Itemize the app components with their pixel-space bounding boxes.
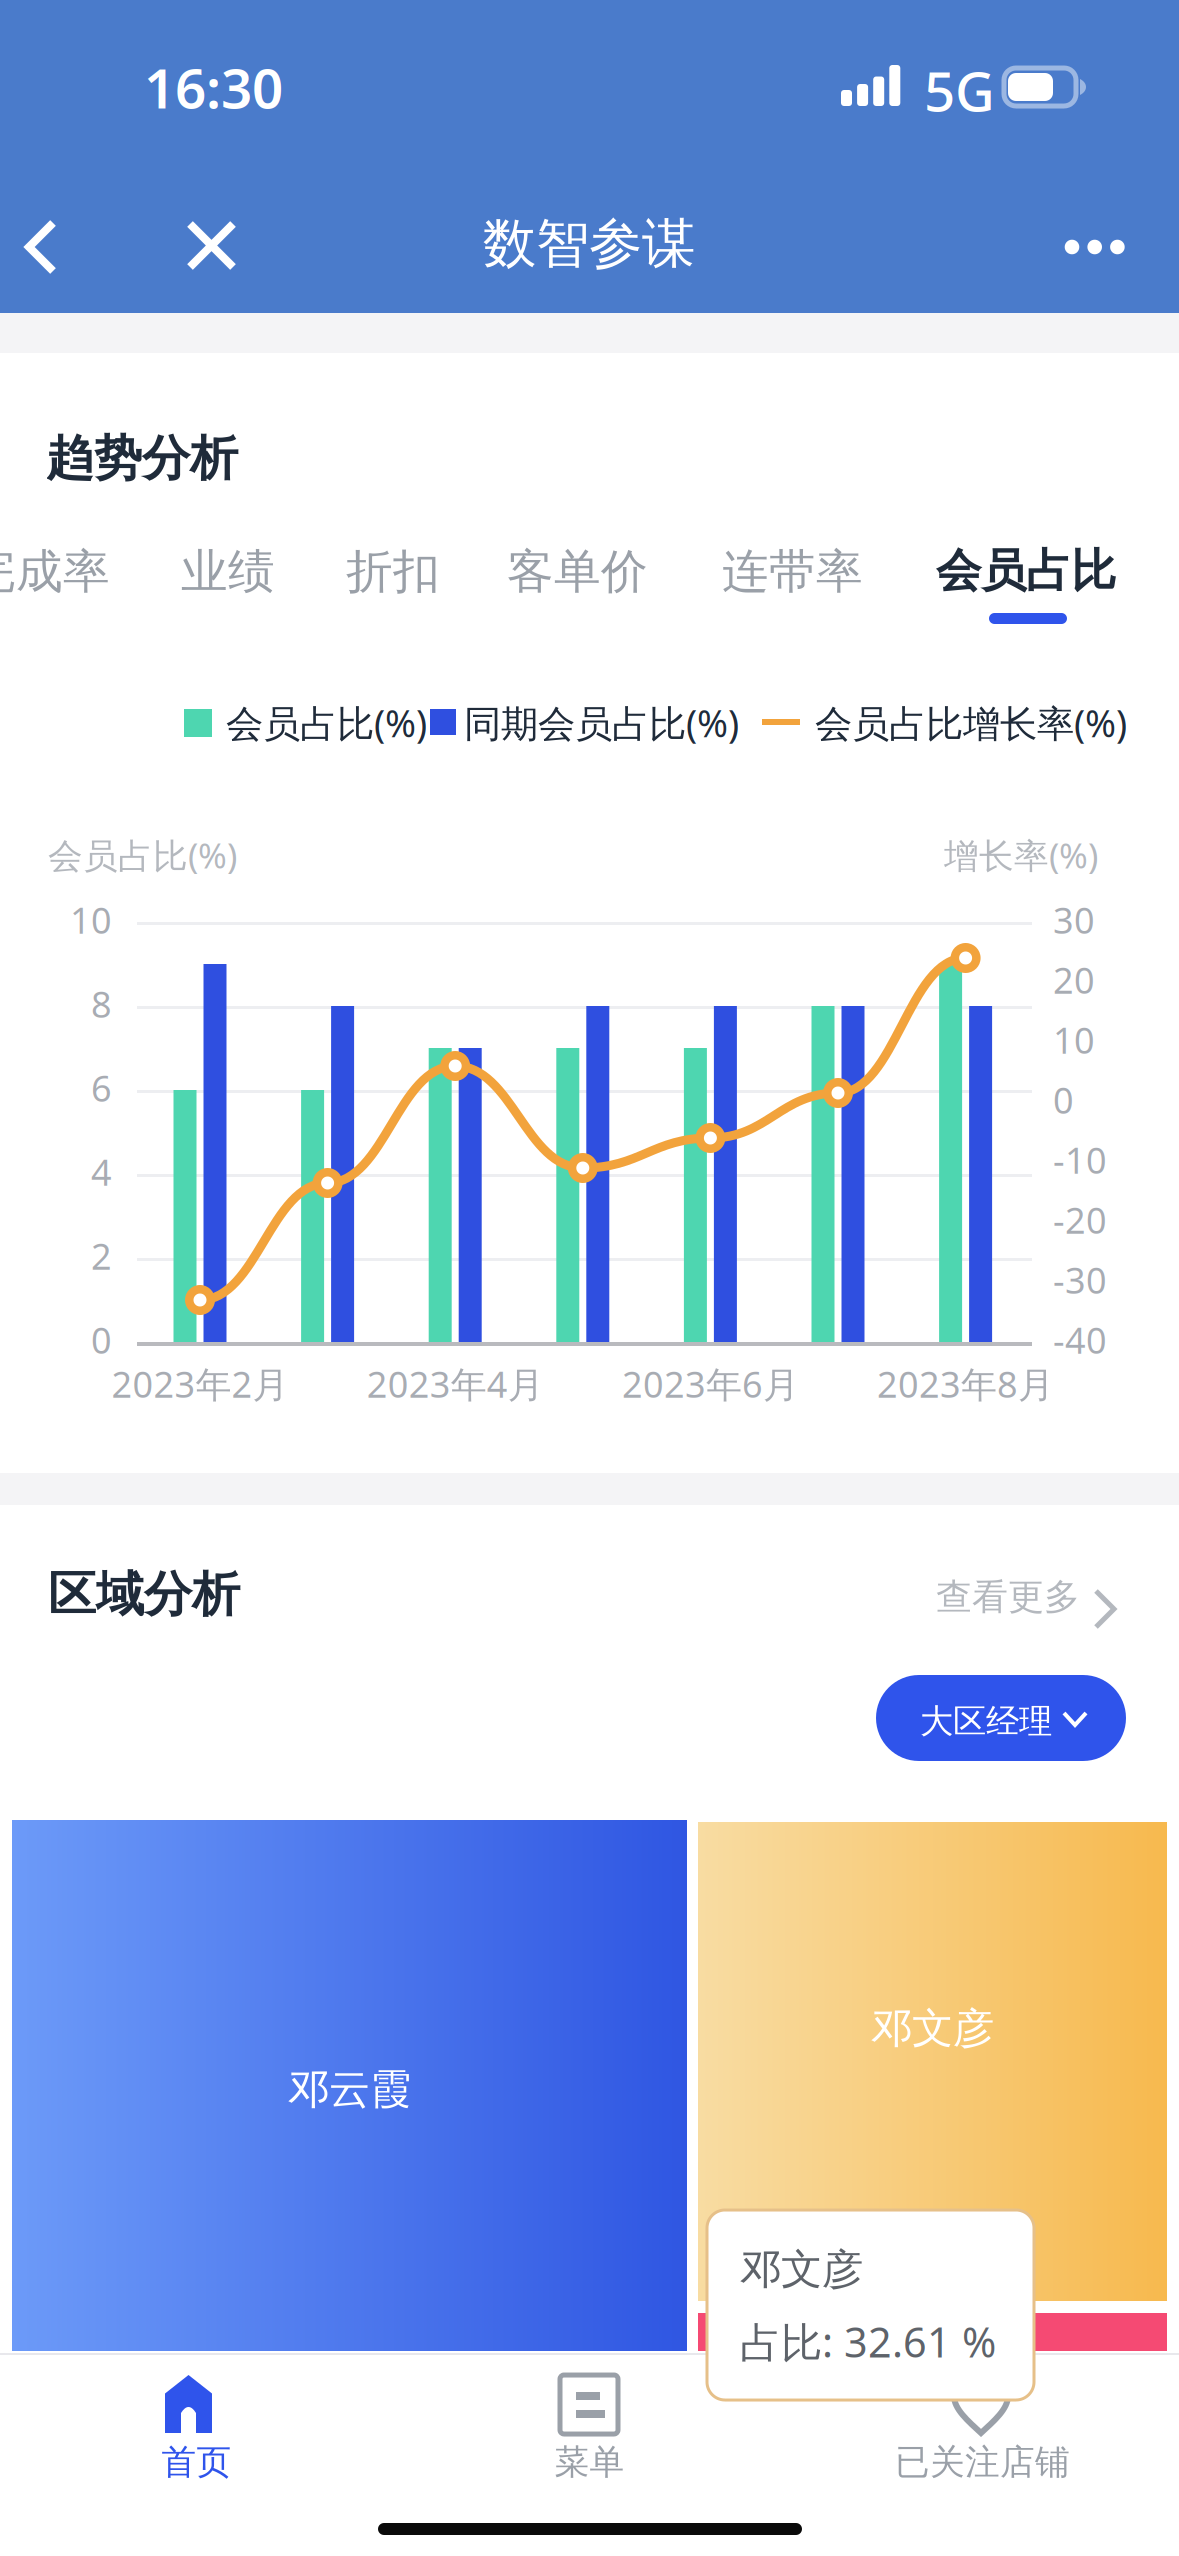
button[interactable]: Back — [0, 172, 1179, 2556]
staticText: 16:30 — [144, 51, 283, 124]
staticText: 2023年6月 — [622, 1360, 799, 1408]
staticText: 2 — [91, 1232, 112, 1280]
staticText: 邓文彦 — [740, 2244, 863, 2295]
staticText: 占比: 32.61 % — [740, 2314, 996, 2369]
button[interactable]: 折扣 — [346, 531, 440, 627]
staticText: 客单价 — [507, 543, 648, 600]
staticText: 同期会员占比(%) — [464, 698, 739, 748]
staticText: 会员占比(%) — [48, 832, 237, 878]
staticText: 折扣 — [346, 543, 440, 600]
staticText: 大区经理 — [920, 1701, 1052, 1742]
staticText: 4 — [91, 1148, 112, 1196]
button[interactable]: 连带率 — [722, 531, 863, 627]
staticText: 连带率 — [722, 543, 863, 600]
button[interactable]: 菜单 — [393, 2353, 786, 2523]
staticText: 查看更多 — [936, 1575, 1080, 1619]
staticText: 6 — [91, 1064, 112, 1112]
button[interactable]: 已关注店铺 — [786, 2353, 1179, 2556]
staticText: 0 — [91, 1316, 112, 1364]
button[interactable]: 首页 — [0, 2353, 1179, 2556]
button[interactable]: 查看更多 — [936, 1563, 1179, 2556]
staticText: 20 — [1053, 956, 1095, 1004]
staticText: 会员占比 — [936, 543, 1116, 599]
staticText: 首页 — [161, 2441, 231, 2484]
staticText: 0 — [1053, 1076, 1074, 1124]
button[interactable]: 业绩 — [181, 531, 275, 627]
staticText: 区域分析 — [48, 1565, 240, 1624]
staticText: 邓文彦 — [871, 2003, 994, 2054]
staticText: 2023年8月 — [877, 1360, 1054, 1408]
button[interactable]: 完成率 — [0, 531, 110, 627]
staticText: 2023年2月 — [111, 1360, 288, 1408]
button[interactable]: More — [1050, 172, 1179, 2556]
staticText: -30 — [1053, 1256, 1107, 1304]
staticText: 菜单 — [554, 2441, 624, 2484]
staticText: 增长率(%) — [944, 832, 1098, 878]
button[interactable]: 客单价 — [507, 531, 648, 627]
staticText: 趋势分析 — [46, 429, 238, 488]
button[interactable]: 大区经理 — [876, 1675, 1179, 2556]
staticText: 数智参谋 — [483, 211, 695, 276]
staticText: 完成率 — [0, 543, 110, 600]
staticText: 8 — [91, 980, 112, 1028]
staticText: 2023年4月 — [367, 1360, 544, 1408]
button[interactable]: 会员占比 — [936, 531, 1116, 627]
staticText: 10 — [70, 896, 112, 944]
staticText: 会员占比(%) — [226, 698, 427, 748]
staticText: -10 — [1053, 1136, 1107, 1184]
staticText: 10 — [1053, 1016, 1095, 1064]
staticText: 邓云霞 — [288, 2064, 411, 2115]
staticText: -20 — [1053, 1196, 1107, 1244]
button[interactable]: Close — [169, 172, 1179, 2556]
staticText: 业绩 — [181, 543, 275, 600]
staticText: 30 — [1053, 896, 1095, 944]
staticText: 会员占比增长率(%) — [815, 698, 1127, 748]
staticText: -40 — [1053, 1316, 1107, 1364]
staticText: 5G — [924, 54, 995, 127]
staticText: 已关注店铺 — [895, 2441, 1070, 2484]
